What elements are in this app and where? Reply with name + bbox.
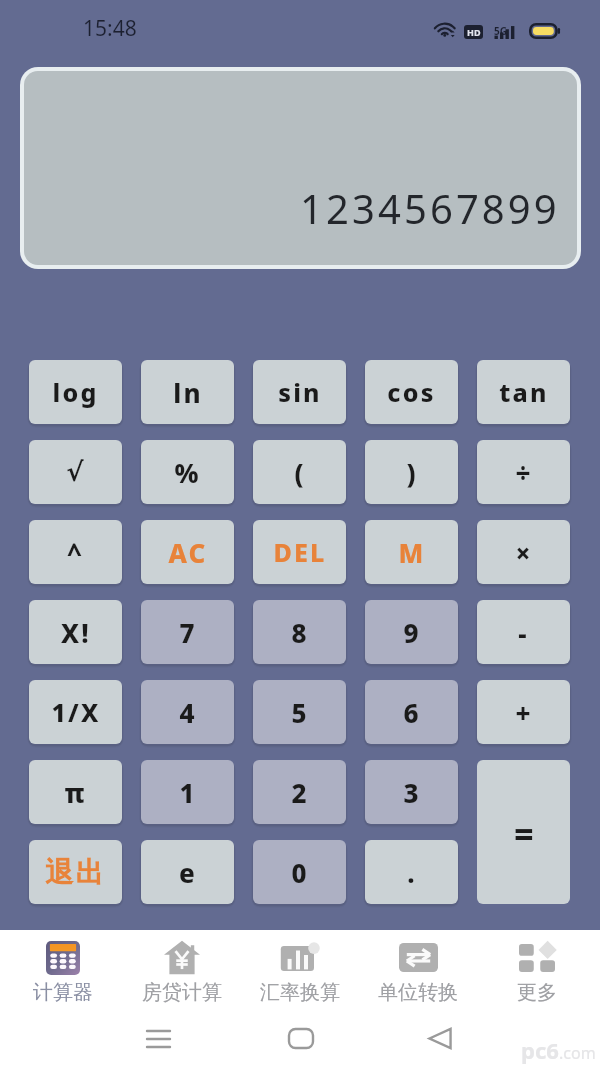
button[interactable]: 9: [365, 600, 458, 664]
button[interactable]: 计算器: [8, 930, 118, 1010]
button[interactable]: M: [365, 520, 458, 584]
staticText: ln: [173, 375, 203, 410]
button[interactable]: Home: [273, 1016, 329, 1061]
button[interactable]: 退出: [29, 840, 122, 904]
button[interactable]: (: [253, 440, 346, 504]
staticText: 5: [291, 695, 309, 730]
staticText: 4: [179, 695, 197, 730]
staticText: 0: [291, 855, 309, 890]
staticText: 退出: [45, 855, 106, 890]
staticText: 8: [291, 615, 309, 650]
staticText: DEL: [273, 535, 327, 569]
staticText: cos: [387, 375, 436, 409]
button[interactable]: AC: [141, 520, 234, 584]
staticText: ): [406, 455, 418, 490]
staticText: +: [515, 695, 533, 730]
button[interactable]: DEL: [253, 520, 346, 584]
button[interactable]: 7: [141, 600, 234, 664]
button[interactable]: e: [141, 840, 234, 904]
button[interactable]: ): [365, 440, 458, 504]
staticText: 1/X: [51, 695, 101, 729]
button[interactable]: 6: [365, 680, 458, 744]
staticText: 1: [179, 775, 197, 810]
staticText: %: [174, 455, 201, 490]
button[interactable]: 更多: [482, 930, 592, 1010]
staticText: 房贷计算: [142, 980, 222, 1005]
button[interactable]: X!: [29, 600, 122, 664]
staticText: 单位转换: [378, 980, 458, 1005]
staticText: ×: [515, 535, 533, 570]
staticText: M: [398, 535, 426, 570]
button[interactable]: 4: [141, 680, 234, 744]
button[interactable]: 8: [253, 600, 346, 664]
staticText: 15:48: [83, 14, 137, 43]
staticText: log: [52, 375, 99, 409]
staticText: 计算器: [33, 980, 93, 1005]
staticText: 更多: [517, 980, 557, 1005]
staticText: HD: [467, 26, 481, 38]
staticText: 2: [291, 775, 309, 810]
staticText: 6: [403, 695, 421, 730]
staticText: =: [514, 811, 534, 857]
staticText: ^: [67, 535, 84, 570]
button[interactable]: 0: [253, 840, 346, 904]
button[interactable]: .: [365, 840, 458, 904]
button[interactable]: 5: [253, 680, 346, 744]
button[interactable]: =: [477, 760, 570, 904]
button[interactable]: 汇率换算: [245, 930, 355, 1010]
button[interactable]: √: [29, 440, 122, 504]
button[interactable]: %: [141, 440, 234, 504]
staticText: .: [407, 855, 417, 890]
staticText: 9: [403, 615, 421, 650]
staticText: X!: [61, 615, 91, 650]
staticText: (: [294, 455, 306, 490]
staticText: 7: [179, 615, 197, 650]
staticText: e: [179, 855, 197, 890]
staticText: -: [518, 615, 529, 650]
button[interactable]: ^: [29, 520, 122, 584]
staticText: AC: [168, 535, 208, 570]
button[interactable]: 3: [365, 760, 458, 824]
staticText: sin: [278, 375, 322, 409]
button[interactable]: ÷: [477, 440, 570, 504]
button[interactable]: Recent apps: [130, 1016, 186, 1061]
staticText: π: [64, 775, 87, 810]
staticText: 5G: [494, 24, 507, 37]
button[interactable]: sin: [253, 360, 346, 424]
button[interactable]: cos: [365, 360, 458, 424]
button[interactable]: 1/X: [29, 680, 122, 744]
staticText: 1234567899: [300, 181, 560, 235]
button[interactable]: 房贷计算: [127, 930, 237, 1010]
button[interactable]: -: [477, 600, 570, 664]
button[interactable]: 单位转换: [363, 930, 473, 1010]
staticText: √: [66, 457, 86, 487]
staticText: .com: [559, 1042, 596, 1064]
staticText: 3: [403, 775, 421, 810]
button[interactable]: tan: [477, 360, 570, 424]
staticText: 汇率换算: [260, 980, 340, 1005]
button[interactable]: ×: [477, 520, 570, 584]
button[interactable]: log: [29, 360, 122, 424]
button[interactable]: Back: [412, 1016, 468, 1061]
staticText: pc6: [521, 1035, 559, 1065]
button[interactable]: π: [29, 760, 122, 824]
button[interactable]: ln: [141, 360, 234, 424]
button[interactable]: +: [477, 680, 570, 744]
staticText: tan: [499, 375, 549, 409]
staticText: ÷: [515, 455, 533, 490]
button[interactable]: 1: [141, 760, 234, 824]
button[interactable]: 2: [253, 760, 346, 824]
